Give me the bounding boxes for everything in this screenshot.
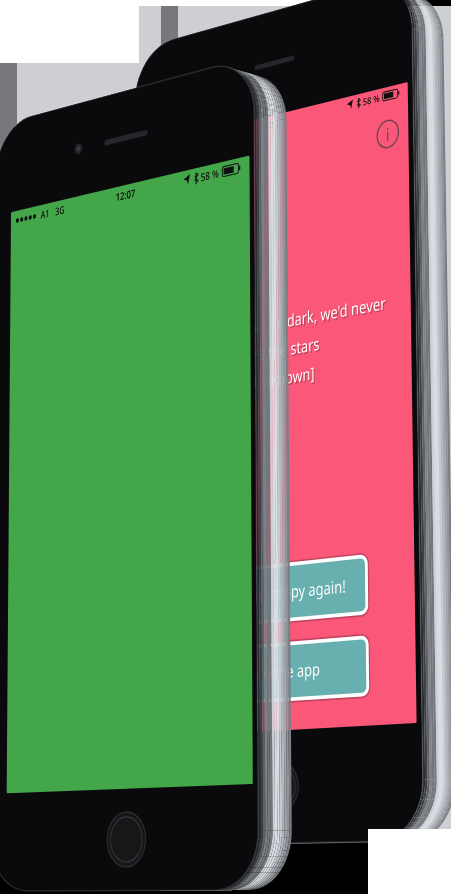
- button[interactable]: App screenshot mockup: [0, 0, 451, 894]
